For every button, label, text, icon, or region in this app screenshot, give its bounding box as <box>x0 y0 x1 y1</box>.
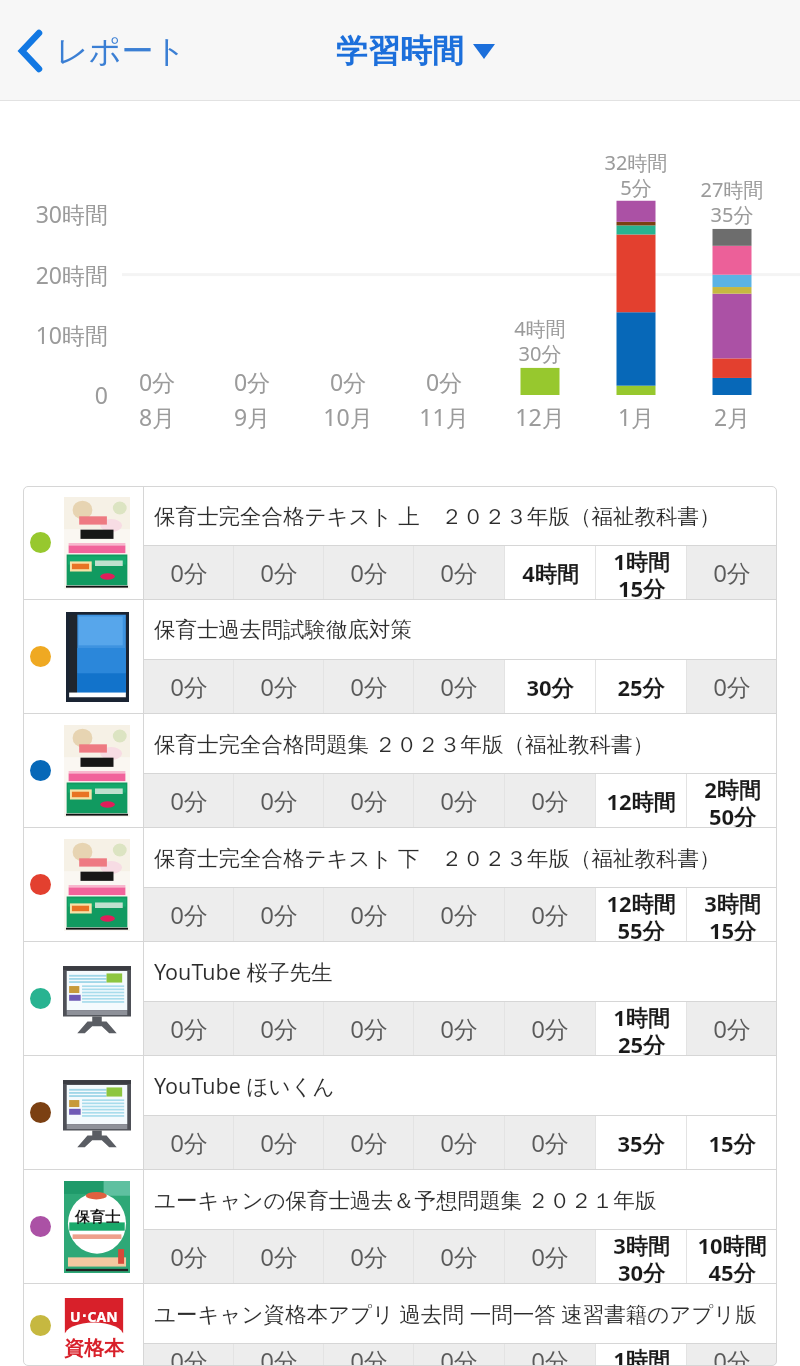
staticText: 0分 <box>713 1012 751 1045</box>
staticText: 0分 <box>440 670 478 703</box>
staticText: 0分 <box>260 898 298 931</box>
staticText: 1時間 <box>613 1344 670 1366</box>
staticText: 25分 <box>617 672 665 702</box>
staticText: 1月 <box>576 401 696 432</box>
staticText: 9月 <box>192 401 312 432</box>
staticText: 0分 <box>440 1344 478 1366</box>
staticText: YouTube 桜子先生 <box>154 957 333 986</box>
staticText: 保育士完全合格テキスト 上 ２０２３年版（福祉教科書） <box>154 501 721 530</box>
staticText: 12時間 <box>606 786 676 816</box>
staticText: 0分 <box>170 556 208 589</box>
staticText: 0分 <box>440 784 478 817</box>
staticText: 0分 <box>350 670 388 703</box>
staticText: 8月 <box>97 401 217 432</box>
staticText: 0分 <box>260 670 298 703</box>
staticText: 4時間 <box>522 558 579 588</box>
staticText: 30時間 <box>0 198 108 229</box>
staticText: 0分 <box>350 898 388 931</box>
staticText: 10時間 <box>0 319 108 350</box>
staticText: U･CAN <box>70 1307 118 1326</box>
button[interactable]: 保育士完全合格テキスト 下 ２０２３年版（福祉教科書） <box>23 828 777 941</box>
staticText: 11月 <box>384 401 504 432</box>
staticText: 3時間 15分 <box>704 888 761 941</box>
button[interactable]: 保育士 <box>23 1170 777 1283</box>
staticText: 0分 <box>182 366 322 397</box>
staticText: 12時間 55分 <box>606 888 676 941</box>
staticText: 0分 <box>350 1126 388 1159</box>
staticText: 2時間 50分 <box>704 774 761 827</box>
staticText: 30分 <box>526 672 574 702</box>
staticText: 0分 <box>374 366 514 397</box>
staticText: 4時間 30分 <box>470 315 610 367</box>
staticText: ユーキャン資格本アプリ 過去問 一問一答 速習書籍のアプリ版 <box>154 1299 757 1328</box>
button[interactable]: YouTube 桜子先生 <box>23 942 777 1055</box>
staticText: 0分 <box>170 1126 208 1159</box>
staticText: 0分 <box>170 670 208 703</box>
staticText: ユーキャンの保育士過去＆予想問題集 ２０２１年版 <box>154 1185 657 1214</box>
staticText: 0分 <box>440 898 478 931</box>
staticText: 資格本 <box>64 1336 124 1361</box>
staticText: 保育士完全合格問題集 ２０２３年版（福祉教科書） <box>154 729 655 758</box>
staticText: 12月 <box>480 401 600 432</box>
staticText: 保育士完全合格テキスト 下 ２０２３年版（福祉教科書） <box>154 843 721 872</box>
staticText: 20時間 <box>0 259 108 290</box>
staticText: 0分 <box>531 1012 569 1045</box>
staticText: 35分 <box>617 1128 665 1158</box>
button[interactable]: U･CAN <box>23 1284 777 1366</box>
staticText: 0分 <box>440 556 478 589</box>
staticText: 保育士過去問試験徹底対策 <box>154 616 412 643</box>
staticText: 0分 <box>170 1344 208 1366</box>
staticText: 0分 <box>260 1126 298 1159</box>
staticText: 0分 <box>531 1344 569 1366</box>
other: Change metric <box>473 44 495 59</box>
staticText: 0分 <box>260 1240 298 1273</box>
button[interactable]: Back <box>8 21 197 81</box>
staticText: 0分 <box>260 556 298 589</box>
other: Back <box>18 29 43 73</box>
staticText: 0分 <box>278 366 418 397</box>
button[interactable]: 保育士過去問試験徹底対策 <box>23 600 777 713</box>
staticText: 0分 <box>440 1126 478 1159</box>
staticText: レポート <box>56 31 187 71</box>
staticText: 0分 <box>87 366 227 397</box>
staticText: 0分 <box>350 1012 388 1045</box>
staticText: 1時間 15分 <box>613 546 670 599</box>
staticText: 0分 <box>260 1344 298 1366</box>
staticText: 0分 <box>531 784 569 817</box>
staticText: 保育士 <box>75 1208 120 1227</box>
button[interactable]: 保育士完全合格テキスト 上 ２０２３年版（福祉教科書） <box>23 486 777 599</box>
staticText: 0分 <box>170 784 208 817</box>
staticText: 0分 <box>440 1240 478 1273</box>
button[interactable]: 保育士完全合格問題集 ２０２３年版（福祉教科書） <box>23 714 777 827</box>
staticText: 0分 <box>350 1240 388 1273</box>
staticText: 0分 <box>713 1344 751 1366</box>
staticText: 0分 <box>260 1012 298 1045</box>
button[interactable]: YouTube ほいくん <box>23 1056 777 1169</box>
staticText: 学習時間 <box>336 31 464 71</box>
staticText: 0分 <box>350 556 388 589</box>
staticText: 0分 <box>713 556 751 589</box>
staticText: 0 <box>0 379 108 410</box>
staticText: 15分 <box>708 1128 756 1158</box>
button[interactable]: 学習時間 <box>328 25 503 77</box>
staticText: 27時間 35分 <box>662 176 800 228</box>
staticText: 3時間 30分 <box>613 1230 670 1283</box>
staticText: 0分 <box>713 670 751 703</box>
staticText: 32時間 5分 <box>566 149 706 201</box>
staticText: 10月 <box>288 401 408 432</box>
staticText: 2月 <box>672 401 792 432</box>
staticText: 0分 <box>170 1240 208 1273</box>
staticText: 0分 <box>531 1126 569 1159</box>
staticText: 0分 <box>531 898 569 931</box>
staticText: 0分 <box>350 784 388 817</box>
staticText: YouTube ほいくん <box>154 1071 335 1100</box>
staticText: 0分 <box>260 784 298 817</box>
staticText: 10時間 45分 <box>697 1230 767 1283</box>
staticText: 1時間 25分 <box>613 1002 670 1055</box>
staticText: 0分 <box>170 898 208 931</box>
staticText: 0分 <box>531 1240 569 1273</box>
staticText: 0分 <box>170 1012 208 1045</box>
staticText: 0分 <box>440 1012 478 1045</box>
staticText: 0分 <box>350 1344 388 1366</box>
